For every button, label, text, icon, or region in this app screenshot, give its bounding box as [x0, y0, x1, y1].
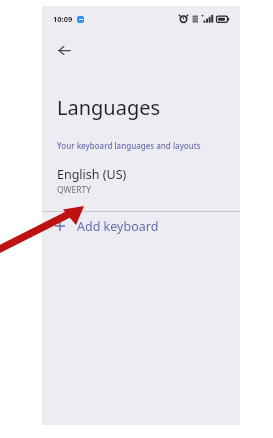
staticText: Languages	[57, 94, 161, 121]
button[interactable]: English (US)	[42, 164, 240, 202]
staticText: QWERTY	[57, 184, 92, 196]
staticText: English (US)	[57, 166, 127, 183]
staticText: Add keyboard	[77, 218, 159, 235]
staticText: Your keyboard languages and layouts	[57, 140, 201, 151]
button[interactable]: Back	[53, 39, 75, 61]
button[interactable]: Add keyboard	[42, 212, 240, 240]
staticText: 10:09	[53, 14, 73, 24]
